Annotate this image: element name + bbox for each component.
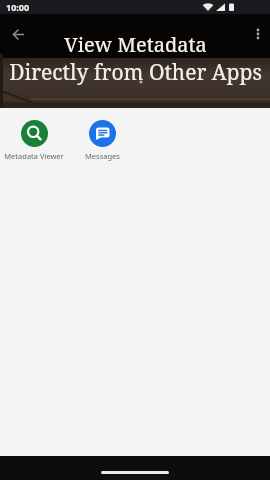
staticText: 10:00 xyxy=(6,1,30,13)
staticText: Messages xyxy=(85,151,120,161)
staticText: Directly from Other Apps xyxy=(9,58,262,87)
button[interactable] xyxy=(248,22,268,42)
button[interactable] xyxy=(6,22,30,46)
button[interactable]: Messages xyxy=(68,120,136,161)
staticText: Metadata Viewer xyxy=(4,151,64,161)
button[interactable]: Metadata Viewer xyxy=(0,120,68,161)
staticText: View Metadata xyxy=(64,31,207,58)
